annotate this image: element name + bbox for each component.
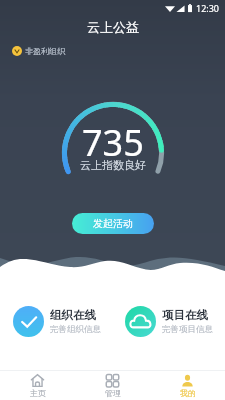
staticText: 组织在线 [50, 308, 96, 322]
button[interactable]: 项目在线 [125, 306, 223, 337]
button[interactable]: 主页 [0, 371, 75, 400]
button[interactable]: 我的 [150, 371, 225, 400]
staticText: 12:30 [196, 2, 220, 14]
staticText: 项目在线 [162, 308, 208, 322]
button[interactable]: 组织在线 [13, 306, 110, 337]
button[interactable]: 管理 [75, 371, 150, 400]
staticText: 主页 [30, 388, 46, 398]
staticText: 735 [82, 118, 144, 167]
staticText: 完善项目信息 [162, 324, 213, 335]
staticText: 云上公益 [87, 19, 139, 35]
staticText: 非盈利组织 [25, 46, 65, 56]
staticText: 我的 [180, 388, 196, 398]
button[interactable]: 非盈利组织 [12, 46, 65, 56]
staticText: 管理 [105, 388, 121, 398]
staticText: 完善组织信息 [50, 324, 101, 335]
staticText: 发起活动 [93, 217, 133, 230]
staticText: 云上指数良好 [80, 158, 146, 172]
button[interactable]: 发起活动 [72, 213, 154, 234]
